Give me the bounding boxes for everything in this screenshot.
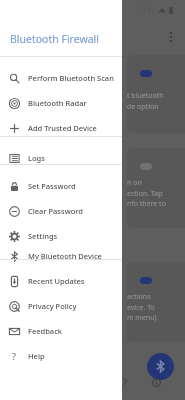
button[interactable]: More options [170, 32, 174, 44]
staticText: ? [123, 376, 127, 388]
staticText: t bluetooth de option [127, 91, 164, 111]
button[interactable]: Help [117, 374, 133, 390]
button[interactable]: My Bluetooth Device [0, 245, 122, 267]
staticText: Bluetooth Firewall [10, 32, 100, 46]
button[interactable]: Feedback [0, 320, 122, 342]
staticText: Bluetooth Radar [28, 98, 87, 108]
staticText: ? [12, 350, 16, 362]
button[interactable]: Add Trusted Device [0, 117, 122, 139]
button[interactable]: Bluetooth Radar [0, 92, 122, 114]
button[interactable]: Perform Bluetooth Scan [0, 67, 122, 89]
staticText: Recent Updates [28, 276, 85, 286]
staticText: actions evice. To m menu) [127, 292, 157, 322]
staticText: Settings [28, 231, 58, 241]
button[interactable]: Privacy Policy [0, 295, 122, 317]
button[interactable]: Clear Password [0, 200, 122, 222]
button[interactable]: ? [0, 345, 122, 367]
staticText: Help [28, 351, 45, 361]
button[interactable]: n on ection. Tap nfo there to [127, 148, 185, 228]
staticText: Feedback [28, 326, 63, 336]
staticText: Clear Password [28, 206, 83, 216]
button[interactable]: t bluetooth de option [127, 55, 185, 133]
staticText: Add Trusted Device [28, 123, 97, 133]
staticText: Set Password [28, 181, 76, 191]
staticText: n on ection. Tap nfo there to [127, 178, 166, 208]
button[interactable]: actions evice. To m menu) [127, 262, 185, 342]
staticText: My Bluetooth Device [28, 251, 102, 261]
staticText: Perform Bluetooth Scan [28, 73, 114, 83]
button[interactable]: Logs [0, 147, 122, 169]
button[interactable]: Settings [0, 225, 122, 247]
button[interactable]: Recent Updates [0, 270, 122, 292]
staticText: Logs [28, 153, 45, 163]
button[interactable]: Bluetooth [147, 353, 174, 380]
staticText: Privacy Policy [28, 301, 77, 311]
button[interactable]: Set Password [0, 175, 122, 197]
button[interactable]: Info [148, 374, 164, 390]
